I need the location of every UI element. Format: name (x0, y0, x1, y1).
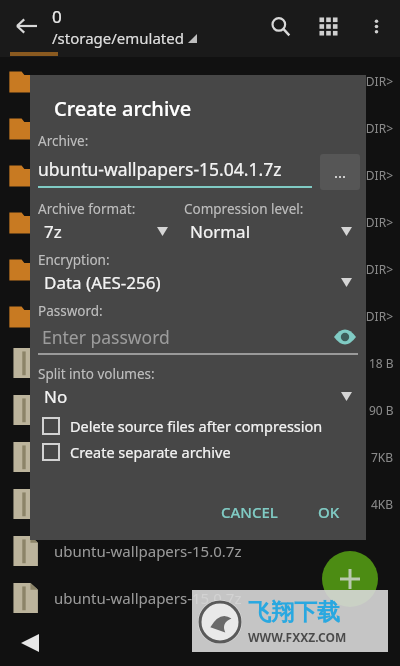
button[interactable]: folder-5 (0, 292, 400, 339)
staticText: Create archive (54, 95, 192, 122)
staticText: Create separate archive (70, 442, 231, 462)
button[interactable]: Browse (320, 154, 360, 190)
button[interactable]: ubuntu-wallpapers-15.0.7z (0, 433, 400, 480)
staticText: OK (318, 502, 340, 522)
staticText: Split into volumes: (38, 365, 155, 383)
staticText: folder-0 (54, 71, 359, 91)
staticText: Archive: (38, 132, 89, 150)
staticText: folder-4 (54, 259, 359, 279)
button[interactable]: ubuntu-wallpapers-15.0.7z (0, 339, 400, 386)
staticText: folder-3 (54, 212, 359, 232)
staticText: Normal (190, 220, 341, 243)
button[interactable]: OK (308, 494, 350, 530)
staticText: Data (AES-256) (44, 271, 341, 294)
button[interactable]: 7z (38, 218, 174, 245)
button[interactable]: folder-3 (0, 198, 400, 245)
button[interactable]: More options (352, 2, 400, 50)
button[interactable]: Grid view (304, 2, 352, 50)
button[interactable]: Search (256, 2, 304, 50)
button[interactable]: ubuntu-wallpapers-15.0.7z (0, 480, 400, 527)
staticText: ubuntu-wallpapers-15.0.7z (54, 400, 369, 420)
button[interactable]: No (38, 383, 358, 410)
staticText: Password: (38, 302, 103, 320)
staticText: 7KB (371, 449, 394, 465)
button[interactable]: 0 (52, 5, 256, 48)
staticText: 0 (52, 5, 62, 28)
staticText: 4KB (371, 496, 394, 512)
button[interactable]: Show password (332, 324, 358, 350)
button[interactable]: CANCEL (211, 494, 288, 530)
staticText: <DIR> (359, 73, 394, 89)
button[interactable]: Back (0, 0, 52, 52)
staticText: Archive format: (38, 200, 136, 218)
button[interactable]: folder-1 (0, 104, 400, 151)
button[interactable]: Normal (184, 218, 358, 245)
button[interactable]: folder-2 (0, 151, 400, 198)
staticText: ubuntu-wallpapers-15.0.7z (54, 447, 371, 467)
staticText: WWW.FXXZ.COM (248, 629, 347, 645)
staticText: folder-1 (54, 118, 359, 138)
staticText: /storage/emulated (52, 28, 184, 48)
staticText: ubuntu-wallpapers-15.0.7z (54, 353, 369, 373)
staticText: 90 B (369, 402, 394, 418)
button[interactable]: ubuntu-wallpapers-15.04.1.7z (38, 157, 312, 188)
button[interactable]: ubuntu-wallpapers-15.0.7z (0, 386, 400, 433)
staticText: Enter password (42, 325, 332, 349)
staticText: Compression level: (184, 200, 304, 218)
staticText: CANCEL (221, 502, 278, 522)
staticText: <DIR> (359, 167, 394, 183)
button[interactable]: Add (322, 551, 378, 607)
button[interactable]: ubuntu-wallpapers-15.0.7z (0, 527, 400, 574)
staticText: <DIR> (359, 120, 394, 136)
staticText: ubuntu-wallpapers-15.0.7z (54, 541, 394, 561)
staticText: No (44, 385, 341, 408)
button[interactable]: Data (AES-256) (38, 269, 358, 296)
button[interactable]: Delete source files after compression (42, 416, 358, 436)
staticText: 7z (44, 220, 157, 243)
staticText: <DIR> (359, 308, 394, 324)
staticText: 飞翔下载 (248, 598, 340, 627)
staticText: ubuntu-wallpapers-15.0.7z (54, 494, 371, 514)
button[interactable]: folder-4 (0, 245, 400, 292)
staticText: 18 B (369, 355, 394, 371)
staticText: ... (334, 162, 347, 182)
button[interactable]: Back (0, 620, 60, 666)
staticText: Encryption: (38, 251, 110, 269)
staticText: <DIR> (359, 214, 394, 230)
button[interactable]: folder-0 (0, 57, 400, 104)
staticText: folder-5 (54, 306, 359, 326)
staticText: <DIR> (359, 261, 394, 277)
staticText: Delete source files after compression (70, 416, 323, 436)
staticText: ubuntu-wallpapers-15.0.7z (54, 588, 394, 608)
button[interactable]: Create separate archive (42, 442, 358, 462)
staticText: folder-2 (54, 165, 359, 185)
button[interactable]: ubuntu-wallpapers-15.0.7z (0, 574, 400, 621)
staticText: ubuntu-wallpapers-15.04.1.7z (38, 157, 282, 181)
button[interactable]: Enter password (38, 324, 358, 350)
